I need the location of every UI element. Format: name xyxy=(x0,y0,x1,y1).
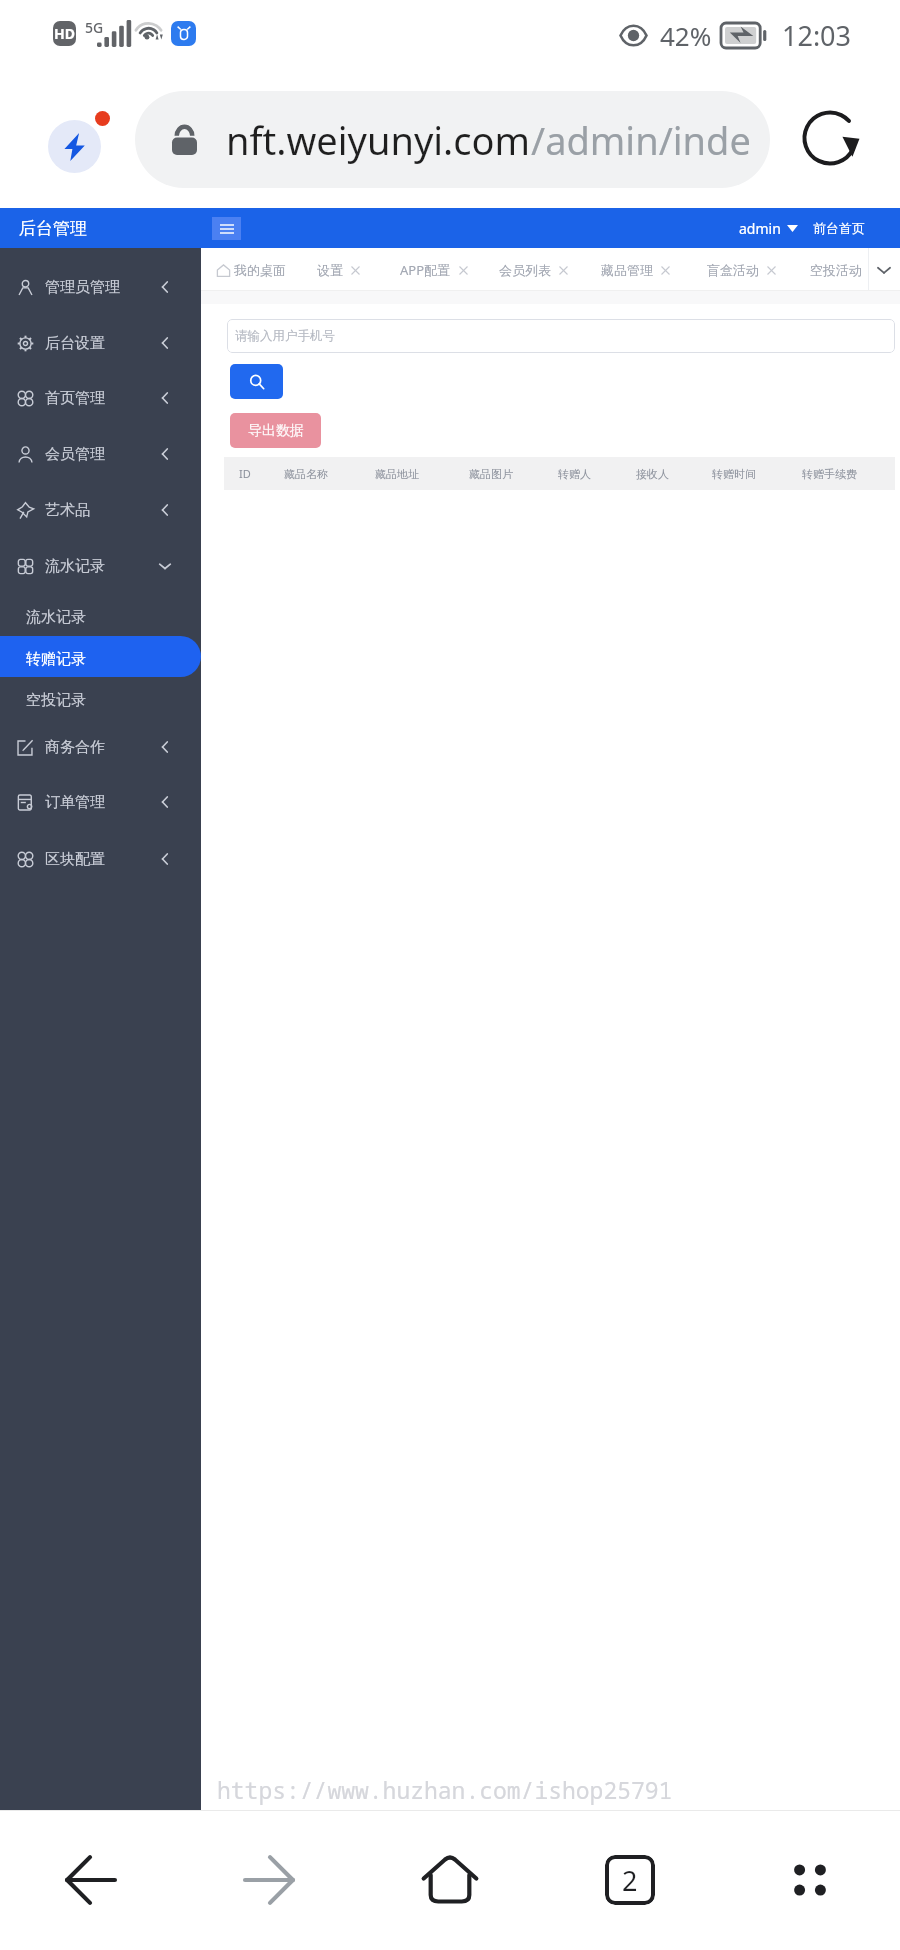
staticText: 藏品名称 xyxy=(284,467,328,481)
staticText: 流水记录 xyxy=(26,608,86,627)
button[interactable]: 订单管理 xyxy=(0,774,201,830)
staticText: 2 xyxy=(622,1862,638,1899)
staticText: 设置 xyxy=(317,262,343,278)
button[interactable]: 流水记录 xyxy=(0,538,201,594)
staticText: 会员列表 xyxy=(499,262,551,278)
button[interactable]: nft.weiyunyi.com xyxy=(135,91,770,188)
staticText: 空投记录 xyxy=(26,691,86,710)
staticText: 42% xyxy=(660,18,712,53)
staticText: 会员管理 xyxy=(45,445,105,464)
staticText: /admin/inde xyxy=(531,114,751,166)
button[interactable]: admin xyxy=(739,219,798,238)
staticText: 接收人 xyxy=(636,467,669,481)
staticText: APP配置 xyxy=(400,261,451,279)
staticText: 藏品管理 xyxy=(601,262,653,278)
staticText: 转赠人 xyxy=(558,467,591,481)
button[interactable]: Search xyxy=(230,364,283,399)
staticText: 藏品图片 xyxy=(469,467,513,481)
staticText: 导出数据 xyxy=(248,422,304,440)
staticText: admin xyxy=(739,219,781,238)
staticText: nft.weiyunyi.com xyxy=(226,114,531,166)
button[interactable]: 艺术品 xyxy=(0,482,201,538)
button[interactable]: 商务合作 xyxy=(0,719,201,775)
button[interactable]: Forward xyxy=(227,1837,313,1923)
button[interactable]: Tabs xyxy=(587,1837,673,1923)
staticText: 转赠记录 xyxy=(26,650,86,669)
button[interactable]: 设置 xyxy=(317,262,360,278)
staticText: 5G xyxy=(85,18,104,37)
button[interactable]: Home xyxy=(407,1837,493,1923)
button[interactable]: 区块配置 xyxy=(0,831,201,887)
staticText: 我的桌面 xyxy=(234,262,286,278)
button[interactable]: Back xyxy=(47,1837,133,1923)
button[interactable]: 管理员管理 xyxy=(0,259,201,315)
button[interactable]: 空投活动 xyxy=(810,262,862,278)
button[interactable]: 空投记录 xyxy=(0,680,201,721)
staticText: 藏品地址 xyxy=(375,467,419,481)
staticText: 商务合作 xyxy=(45,738,105,757)
button[interactable]: 首页管理 xyxy=(0,370,201,426)
button[interactable]: 转赠记录 xyxy=(0,639,201,680)
staticText: 请输入用户手机号 xyxy=(235,328,335,344)
staticText: ID xyxy=(239,466,251,481)
button[interactable]: 后台设置 xyxy=(0,315,201,371)
staticText: 订单管理 xyxy=(45,793,105,812)
staticText: https://www.huzhan.com/ishop25791 xyxy=(217,1774,673,1805)
button[interactable]: More options xyxy=(767,1837,853,1923)
button[interactable]: 会员列表 xyxy=(499,262,568,278)
staticText: HD xyxy=(54,24,75,43)
button[interactable]: More tabs xyxy=(868,248,900,291)
button[interactable]: 会员管理 xyxy=(0,426,201,482)
staticText: 转赠手续费 xyxy=(802,467,857,481)
button[interactable]: 流水记录 xyxy=(0,597,201,638)
staticText: 盲盒活动 xyxy=(707,262,759,278)
button[interactable]: Reload xyxy=(794,102,866,174)
button[interactable]: 我的桌面 xyxy=(217,262,286,278)
staticText: 流水记录 xyxy=(45,557,105,576)
staticText: 后台管理 xyxy=(19,218,87,239)
staticText: 首页管理 xyxy=(45,389,105,408)
button[interactable]: Toggle menu xyxy=(212,217,241,240)
button[interactable]: 前台首页 xyxy=(813,220,865,236)
button[interactable]: Quick actions xyxy=(42,105,110,173)
button[interactable]: 请输入用户手机号 xyxy=(227,319,895,353)
staticText: 后台设置 xyxy=(45,334,105,353)
staticText: 转赠时间 xyxy=(712,467,756,481)
staticText: 12:03 xyxy=(782,17,852,54)
staticText: 艺术品 xyxy=(45,501,90,520)
button[interactable]: 盲盒活动 xyxy=(707,262,776,278)
button[interactable]: APP配置 xyxy=(400,261,468,279)
button[interactable]: 导出数据 xyxy=(230,413,321,448)
staticText: 区块配置 xyxy=(45,850,105,869)
staticText: 管理员管理 xyxy=(45,278,120,297)
button[interactable]: 藏品管理 xyxy=(601,262,670,278)
